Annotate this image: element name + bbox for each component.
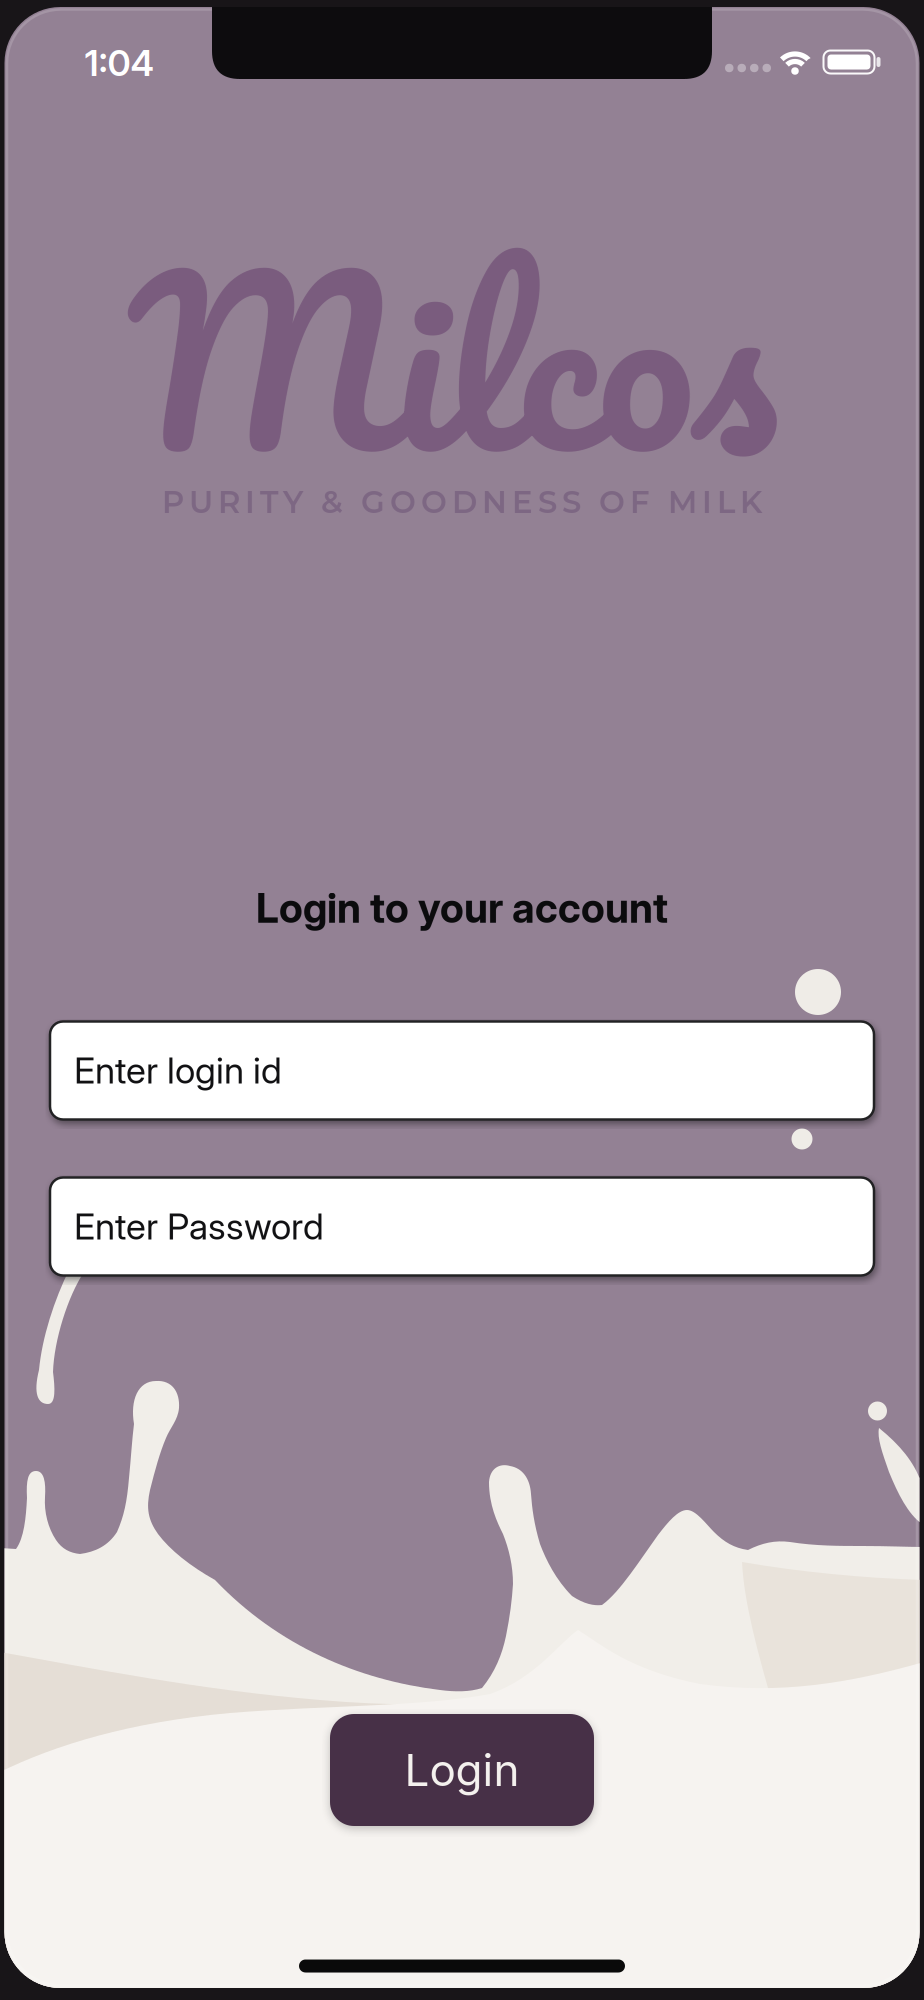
staticText: Login to your account xyxy=(256,883,668,933)
staticText: Milcos xyxy=(128,169,778,549)
staticText: Enter Password xyxy=(74,1205,324,1248)
button[interactable]: Enter Password xyxy=(50,1177,874,1275)
staticText: Enter login id xyxy=(74,1049,282,1092)
button[interactable]: Enter login id xyxy=(50,1021,874,1119)
button[interactable]: Login xyxy=(330,1714,594,1826)
staticText: Login xyxy=(404,1743,519,1797)
staticText: PURITY & GOODNESS OF MILK xyxy=(162,483,762,521)
staticText: 1:04 xyxy=(84,41,153,85)
